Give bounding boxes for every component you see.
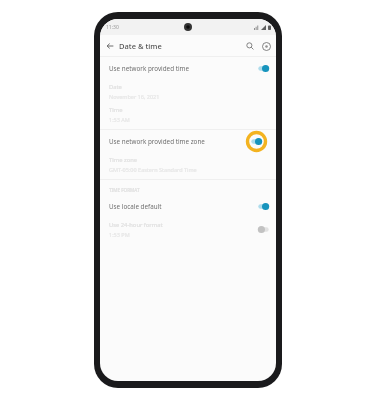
staticText: Use 24-hour format	[109, 221, 163, 229]
button[interactable]: Help	[259, 39, 273, 53]
button[interactable]: Use network provided time	[100, 57, 276, 80]
button[interactable]: Use locale default	[100, 195, 276, 218]
staticText: Use network provided time zone	[109, 137, 205, 146]
staticText: Date	[109, 83, 122, 91]
staticText: GMT-05:00 Eastern Standard Time	[109, 166, 197, 173]
staticText: Time	[109, 106, 123, 114]
button[interactable]: Search	[243, 39, 257, 53]
staticText: 1:53 PM	[109, 231, 130, 238]
staticText: 11:30	[106, 24, 119, 31]
staticText: Time zone	[109, 156, 137, 164]
button[interactable]: Use 24-hour format	[100, 218, 276, 241]
staticText: Use locale default	[109, 202, 162, 211]
staticText: 1:53 AM	[109, 116, 130, 123]
staticText: TIME FORMAT	[109, 187, 140, 193]
button[interactable]: Time zone	[100, 153, 276, 176]
staticText: Date & time	[119, 41, 162, 51]
staticText: November 16, 2021	[109, 93, 160, 100]
button[interactable]: Back	[103, 39, 117, 53]
button[interactable]: Use network provided time zone	[100, 130, 276, 153]
staticText: Use network provided time	[109, 64, 190, 73]
